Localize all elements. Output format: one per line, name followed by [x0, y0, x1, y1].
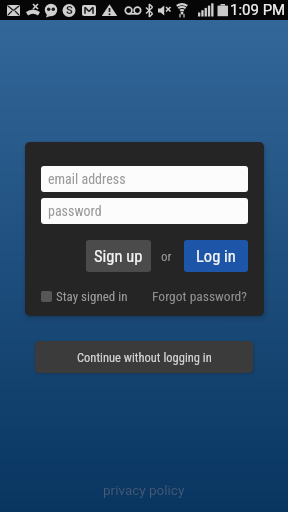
staticText: Sign up — [94, 247, 143, 266]
staticText: S — [66, 4, 73, 17]
button[interactable]: email address — [41, 166, 248, 192]
button[interactable]: Log in — [184, 240, 248, 272]
staticText: Stay signed in — [56, 289, 128, 304]
button[interactable]: password — [41, 198, 248, 224]
button[interactable]: privacy policy — [103, 482, 185, 498]
button[interactable]: Sign up — [86, 240, 151, 272]
staticText: Continue without logging in — [77, 350, 212, 365]
staticText: password — [48, 203, 102, 219]
button[interactable]: Stay signed in — [41, 288, 248, 304]
button[interactable]: Continue without logging in — [35, 341, 253, 373]
staticText: or — [161, 249, 172, 264]
staticText: email address — [48, 171, 126, 187]
staticText: Log in — [196, 247, 236, 266]
staticText: 1:09 PM — [230, 1, 286, 19]
button[interactable]: Forgot password? — [152, 288, 248, 304]
